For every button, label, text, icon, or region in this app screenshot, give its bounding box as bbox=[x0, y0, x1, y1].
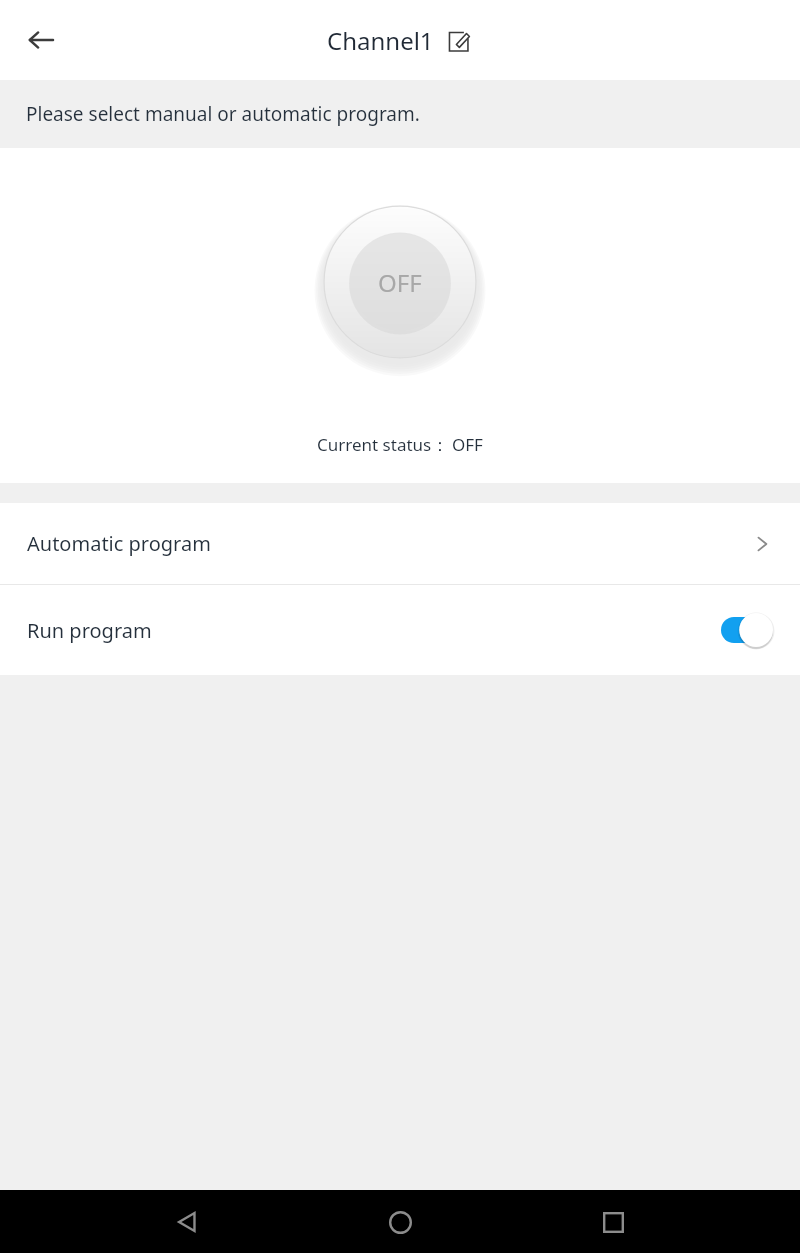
staticText: Current status： bbox=[317, 433, 449, 456]
staticText: OFF bbox=[378, 266, 422, 299]
button[interactable]: Edit name bbox=[443, 26, 473, 56]
staticText: Automatic program bbox=[27, 530, 211, 557]
staticText: Please select manual or automatic progra… bbox=[26, 101, 420, 127]
staticText: Channel1 bbox=[327, 24, 434, 57]
button[interactable]: Power toggle, currently OFF bbox=[316, 198, 484, 366]
button[interactable]: Recent apps bbox=[587, 1196, 639, 1248]
button[interactable]: Home bbox=[374, 1196, 426, 1248]
button[interactable]: Back bbox=[161, 1196, 213, 1248]
button[interactable]: Run program switch, on bbox=[721, 612, 773, 648]
staticText: Run program bbox=[27, 617, 152, 644]
button[interactable]: Automatic program bbox=[0, 503, 800, 584]
button[interactable]: Run program bbox=[0, 585, 800, 675]
button[interactable]: Back bbox=[18, 17, 64, 63]
staticText: OFF bbox=[452, 433, 483, 456]
